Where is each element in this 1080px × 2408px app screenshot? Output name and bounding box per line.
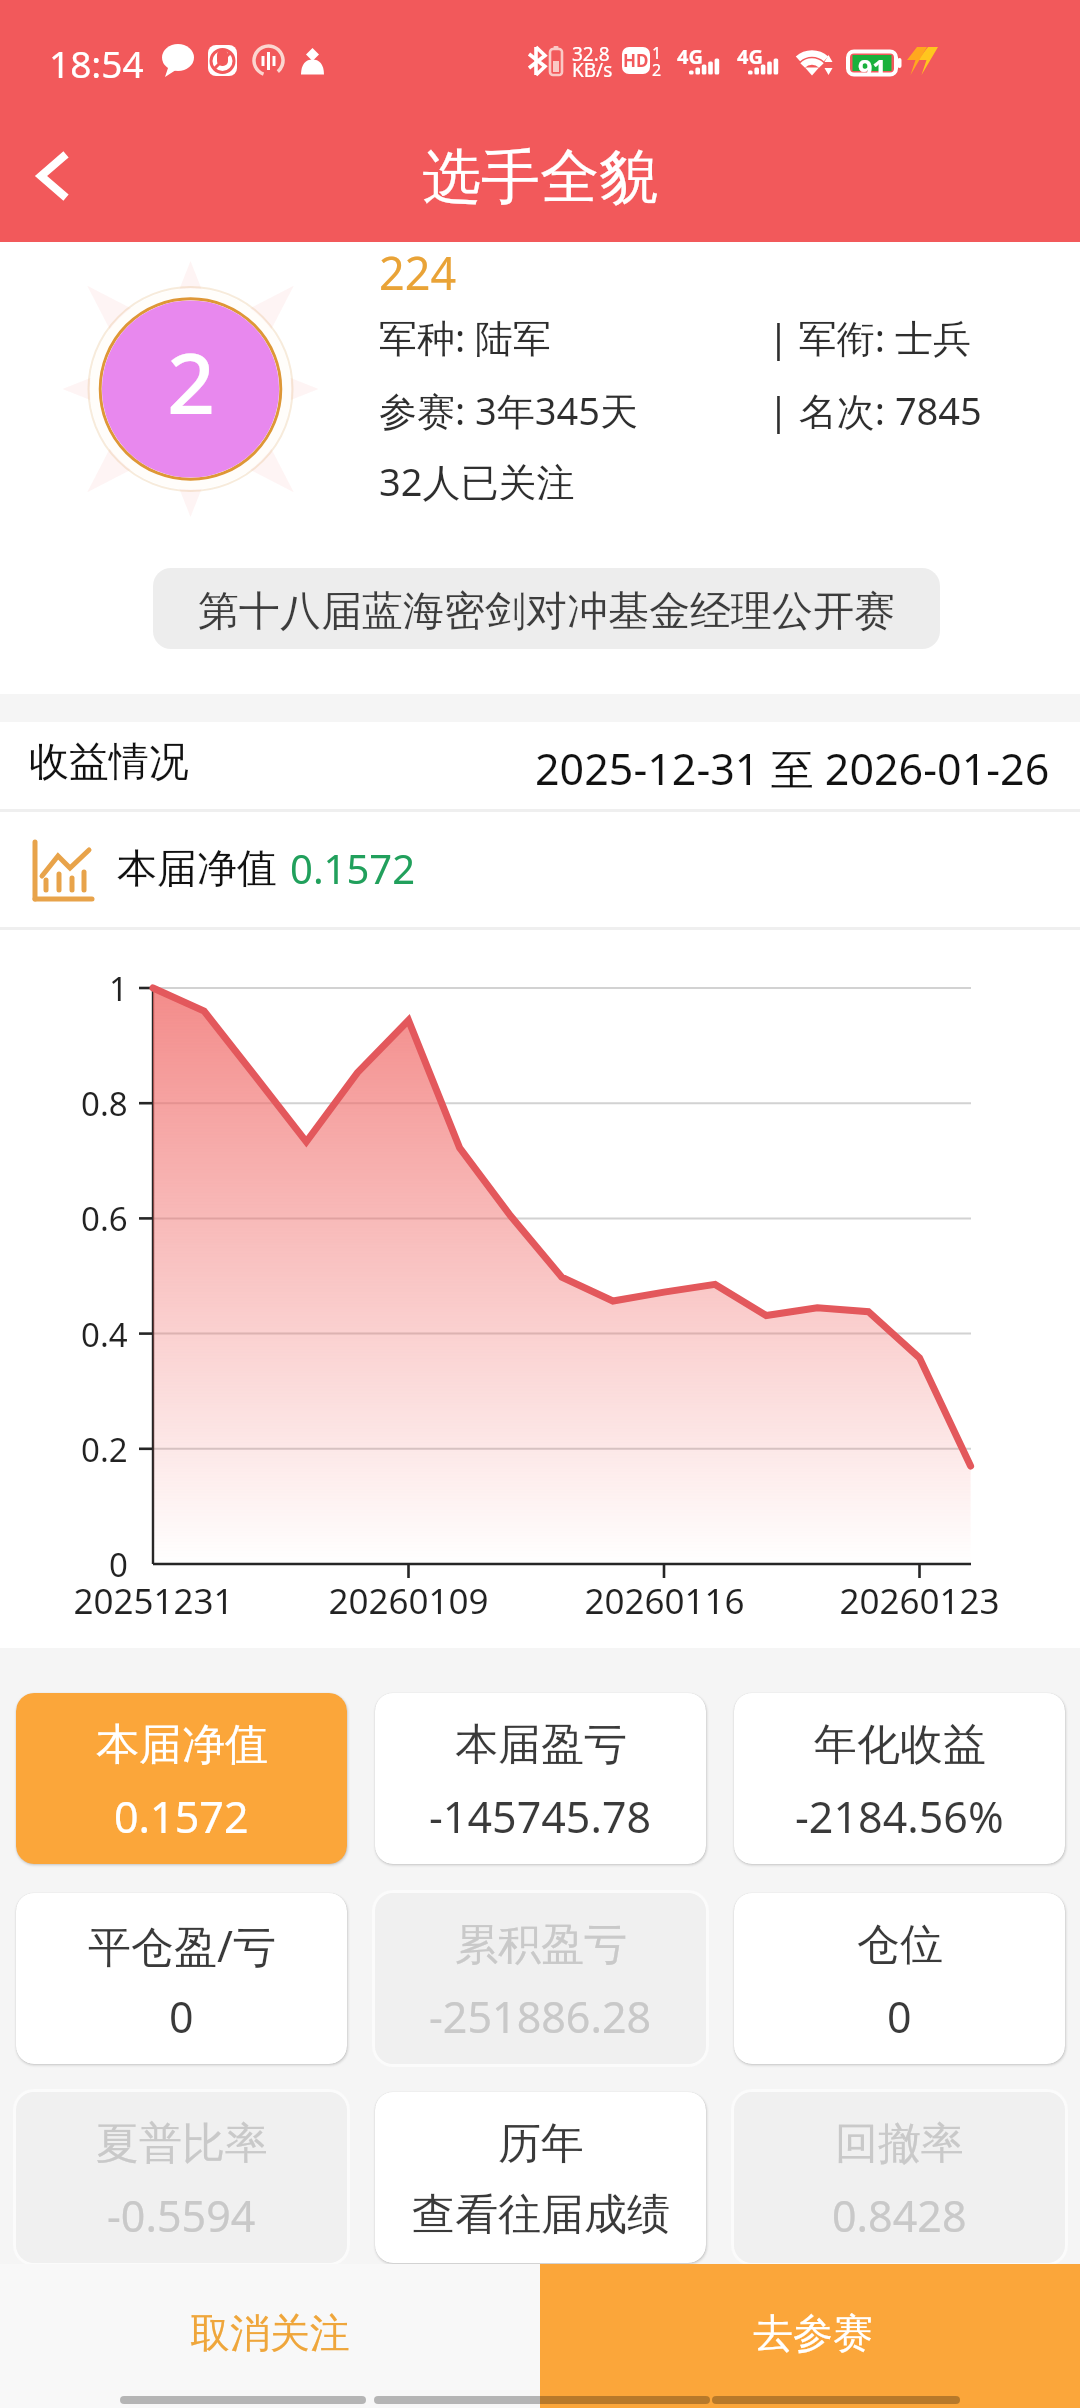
staticText: 32.8 [572, 41, 610, 67]
staticText: 第十八届蓝海密剑对冲基金经理公开赛 [198, 586, 895, 638]
staticText: 1 [109, 966, 128, 1011]
button[interactable]: 回撤率 [734, 2092, 1065, 2263]
button[interactable]: Back [0, 110, 126, 236]
staticText: 4G [677, 43, 703, 70]
button[interactable]: 累积盈亏 [375, 1893, 706, 2064]
staticText: 历年 [498, 2117, 584, 2171]
button[interactable]: 平仓盈/亏 [16, 1893, 347, 2064]
staticText: 32人已关注 [379, 455, 575, 507]
staticText: 20260116 [584, 1577, 745, 1625]
staticText: 20251231 [73, 1577, 234, 1625]
staticText: -2184.56% [795, 1787, 1004, 1846]
staticText: 本届盈亏 [455, 1718, 627, 1772]
staticText: 参赛: 3年345天 [379, 384, 639, 436]
staticText: 回撤率 [835, 2117, 964, 2171]
staticText: 18:54 [49, 38, 144, 88]
button[interactable]: 夏普比率 [16, 2092, 347, 2263]
staticText: 仓位 [857, 1918, 943, 1972]
staticText: 91 [858, 51, 887, 74]
staticText: 224 [379, 242, 457, 303]
staticText: -0.5594 [107, 2186, 256, 2245]
button[interactable]: 第十八届蓝海密剑对冲基金经理公开赛 [153, 568, 940, 649]
staticText: 0.4 [81, 1312, 128, 1357]
staticText: 军种: 陆军 [379, 311, 552, 363]
staticText: 0.1572 [290, 841, 416, 895]
staticText: 0 [887, 1987, 912, 2046]
staticText: 0.1572 [114, 1787, 249, 1846]
staticText: 累积盈亏 [455, 1918, 627, 1972]
staticText: 本届净值 [117, 843, 277, 893]
button[interactable]: 取消关注 [0, 2264, 540, 2408]
staticText: 0 [109, 1542, 128, 1587]
staticText: | 名次: 7845 [768, 384, 982, 436]
staticText: 2025-12-31 至 2026-01-26 [535, 739, 1050, 798]
button[interactable]: 去参赛 [540, 2264, 1080, 2408]
staticText: 2 [167, 324, 216, 438]
staticText: 20260109 [328, 1577, 489, 1625]
staticText: 本届净值 [96, 1718, 268, 1772]
staticText: 夏普比率 [96, 2117, 268, 2171]
staticText: KB/s [572, 57, 613, 83]
staticText: 0.6 [81, 1196, 128, 1241]
staticText: HD [623, 49, 649, 72]
staticText: 20260123 [839, 1577, 1000, 1625]
button[interactable]: 本届净值 [16, 1693, 347, 1864]
staticText: 0 [169, 1987, 194, 2046]
staticText: 平仓盈/亏 [88, 1916, 276, 1975]
staticText: -145745.78 [429, 1787, 652, 1846]
staticText: 收益情况 [29, 736, 189, 786]
staticText: 4G [737, 43, 763, 70]
staticText: 1 [652, 42, 662, 64]
staticText: 2 [652, 59, 662, 81]
staticText: 取消关注 [190, 2308, 350, 2358]
staticText: 去参赛 [753, 2308, 873, 2358]
staticText: 0.2 [81, 1427, 128, 1472]
staticText: 选手全貌 [422, 140, 658, 214]
button[interactable]: 仓位 [734, 1893, 1065, 2064]
staticText: -251886.28 [429, 1987, 652, 2046]
staticText: | 军衔: 士兵 [768, 311, 971, 363]
button[interactable]: 本届盈亏 [375, 1693, 706, 1864]
button[interactable]: 年化收益 [734, 1693, 1065, 1864]
button[interactable]: 历年 [375, 2092, 706, 2263]
staticText: 0.8 [81, 1081, 128, 1126]
staticText: 0.8428 [832, 2186, 967, 2245]
staticText: 年化收益 [814, 1718, 986, 1772]
staticText: 查看往届成绩 [412, 2188, 670, 2242]
